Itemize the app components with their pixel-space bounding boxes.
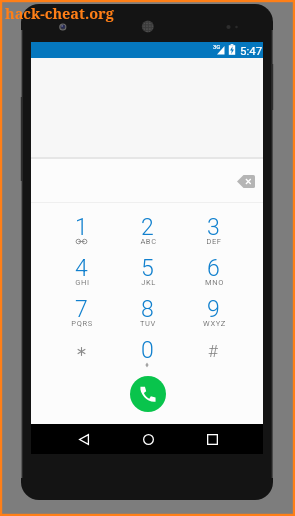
button[interactable]: 6 [180,244,246,285]
staticText: TUV [140,319,156,328]
staticText: 5 [141,255,154,282]
staticText: 0 [141,337,154,364]
staticText: ABC [140,237,157,246]
button[interactable] [48,326,114,370]
staticText: MNO [205,278,224,287]
staticText: DEF [206,237,222,246]
button[interactable]: 1 [48,203,114,244]
button[interactable]: 4 [48,244,114,285]
button[interactable]: Recents [196,427,228,451]
staticText: 6 [207,255,220,282]
staticText: 1 [75,214,88,241]
button[interactable]: 5 [114,244,180,285]
button[interactable]: 9 [180,285,246,326]
button[interactable]: 8 [114,285,180,326]
staticText: 3 [207,214,220,241]
staticText: hack-cheat.org [5,3,114,23]
staticText: JKL [141,278,156,287]
staticText: GHI [75,278,90,287]
staticText: 7 [75,296,88,323]
staticText: # [208,341,218,361]
staticText: 9 [207,296,220,323]
staticText: 3G [213,43,221,50]
button[interactable]: 3 [180,203,246,244]
button[interactable]: Home [132,427,164,451]
staticText: 5:47 [240,44,263,57]
button[interactable]: Backspace [233,168,259,194]
button[interactable]: 0 [114,326,180,370]
button[interactable]: 7 [48,285,114,326]
button[interactable]: Back [68,427,100,451]
staticText: 2 [141,214,154,241]
staticText: PQRS [71,319,93,328]
staticText: 4 [75,255,88,282]
button[interactable]: 2 [114,203,180,244]
button[interactable]: # [180,326,246,370]
staticText: WXYZ [203,319,226,328]
button[interactable]: Call [130,376,166,412]
staticText: 8 [141,296,154,323]
